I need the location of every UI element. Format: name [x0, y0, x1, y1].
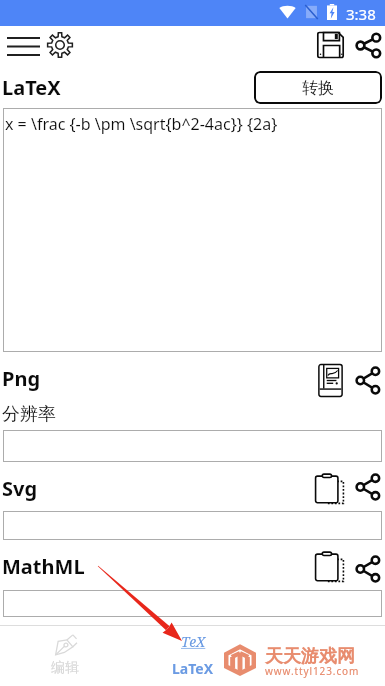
- button[interactable]: Copy MathML: [313, 549, 346, 584]
- staticText: 3:38: [346, 4, 376, 24]
- button[interactable]: Menu: [2, 30, 44, 62]
- button[interactable]: 转换: [254, 71, 382, 104]
- button[interactable]: Share Svg: [352, 470, 383, 503]
- staticText: Png: [2, 365, 41, 392]
- button[interactable]: [3, 430, 382, 462]
- button[interactable]: Copy Svg: [313, 471, 346, 506]
- button[interactable]: x = \frac {-b \pm \sqrt{b^2-4ac}} {2a}: [3, 108, 382, 352]
- staticText: LaTeX: [2, 74, 61, 101]
- button[interactable]: 编辑: [0, 626, 129, 686]
- staticText: LaTeX: [172, 659, 214, 678]
- staticText: 编辑: [51, 659, 79, 677]
- staticText: www.ttyl123.com: [265, 664, 360, 678]
- staticText: x = \frac {-b \pm \sqrt{b^2-4ac}} {2a}: [5, 113, 278, 135]
- staticText: Svg: [2, 475, 38, 502]
- button[interactable]: Save: [314, 30, 346, 60]
- staticText: 分辨率: [2, 403, 56, 426]
- button[interactable]: Share Png: [352, 366, 383, 395]
- staticText: 天天游戏网: [265, 645, 355, 668]
- staticText: 转换: [302, 78, 334, 98]
- staticText: TeX: [181, 632, 206, 651]
- button[interactable]: Share: [352, 31, 384, 59]
- button[interactable]: Save as image: [314, 362, 346, 399]
- button[interactable]: Settings: [44, 29, 75, 61]
- button[interactable]: [3, 511, 382, 540]
- button[interactable]: [3, 590, 382, 617]
- button[interactable]: Share MathML: [352, 552, 383, 585]
- button[interactable]: TeX: [129, 626, 257, 686]
- staticText: MathML: [2, 553, 85, 580]
